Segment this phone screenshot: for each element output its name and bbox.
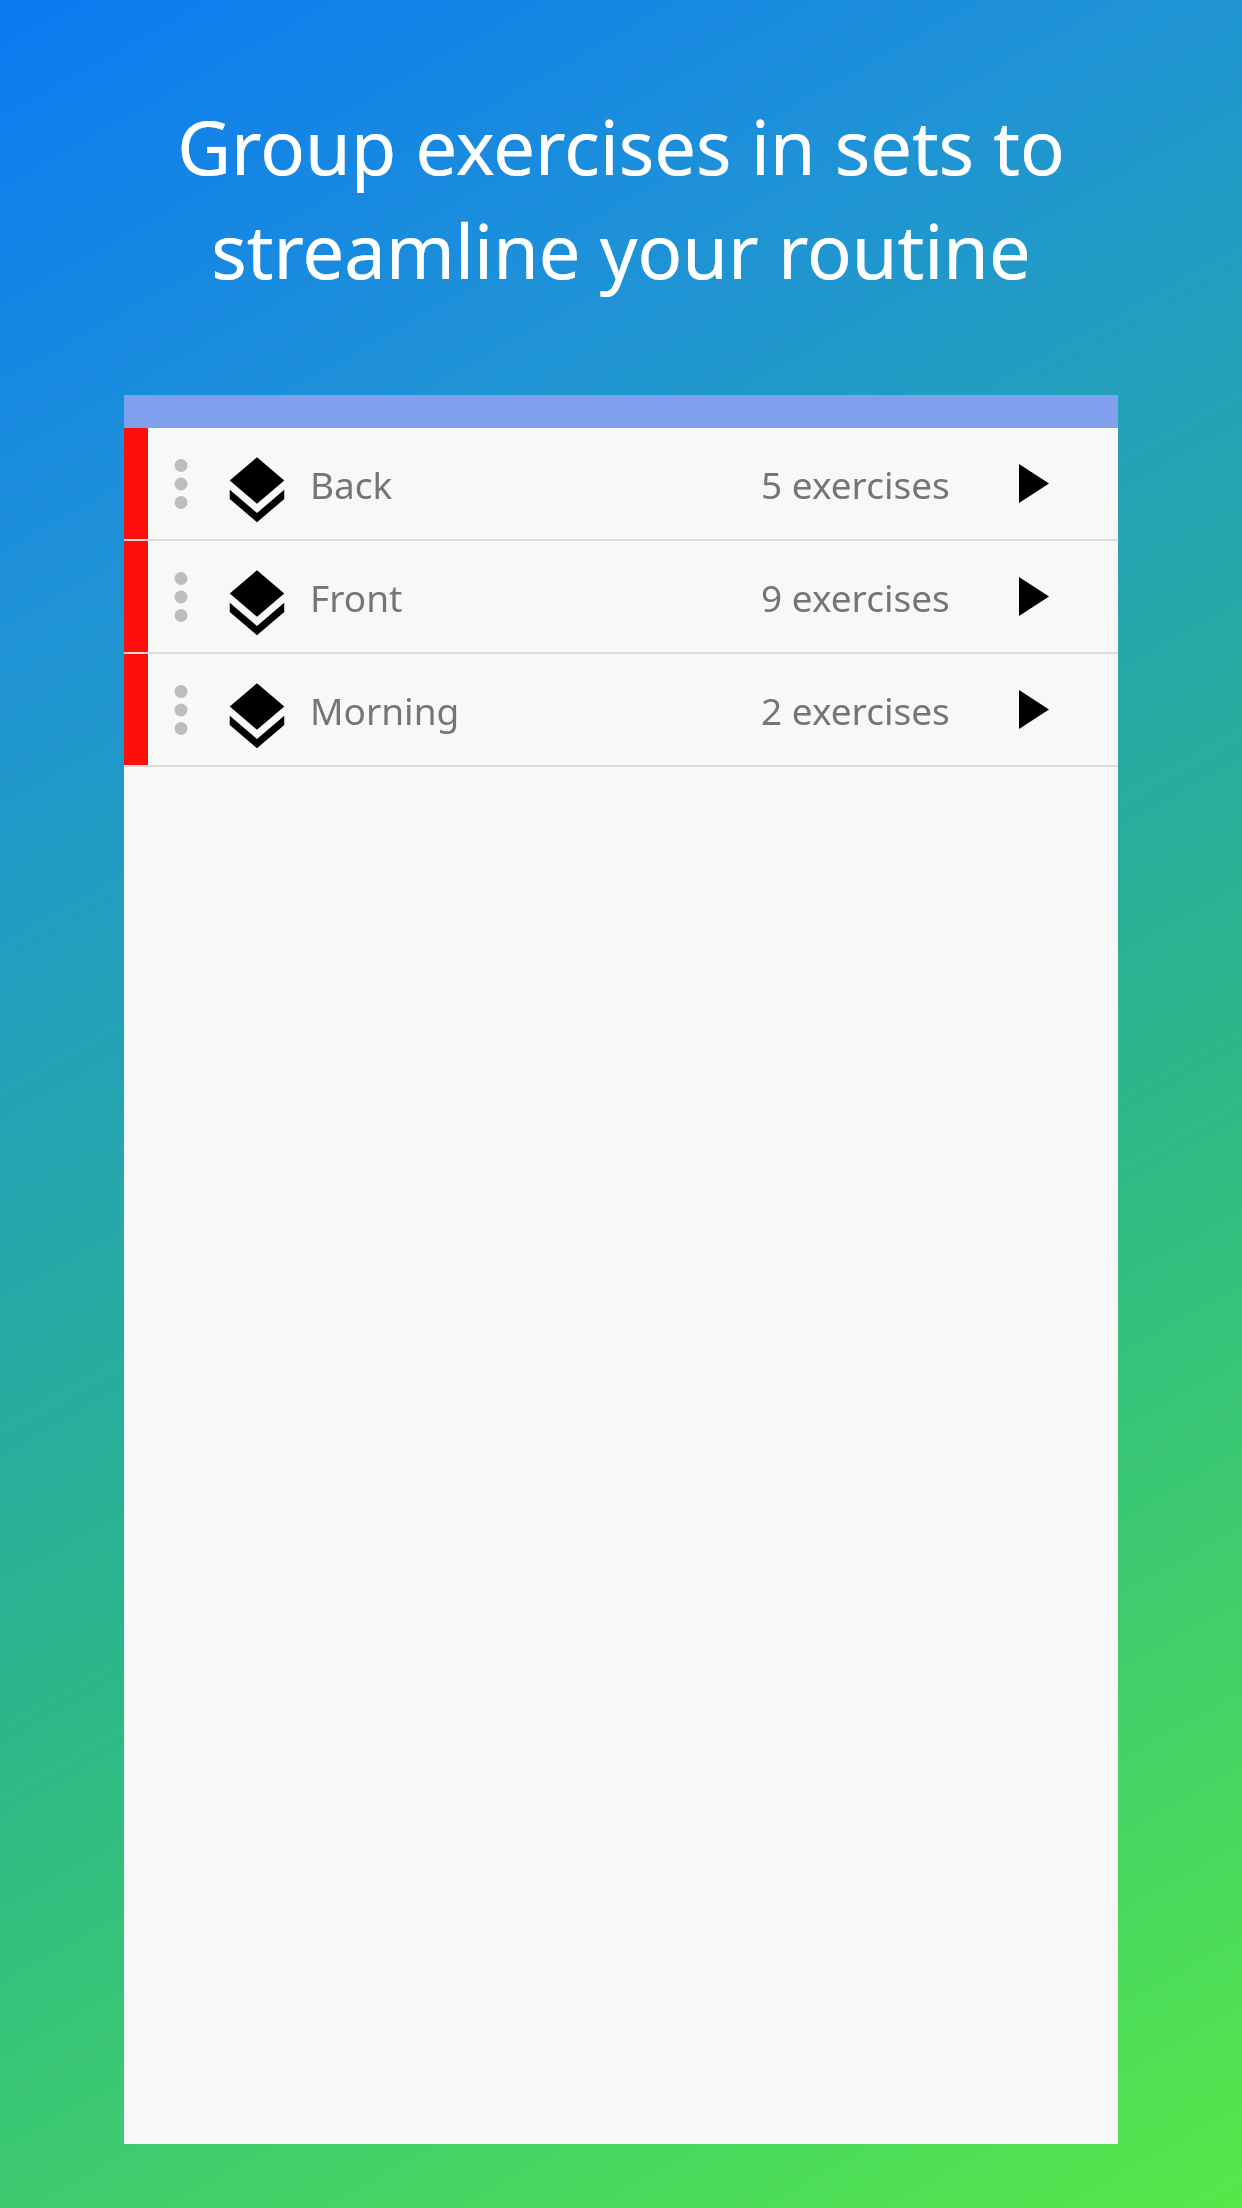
button[interactable]: More options xyxy=(124,428,1118,539)
button[interactable]: More options xyxy=(148,428,214,539)
button[interactable]: Start set xyxy=(950,541,1118,652)
staticText: Group exercises in sets to streamline yo… xyxy=(90,96,1152,300)
button[interactable]: More options xyxy=(148,541,214,652)
staticText: Back xyxy=(310,459,761,509)
staticText: 2 exercises xyxy=(761,685,950,735)
staticText: Front xyxy=(310,572,761,622)
button[interactable]: More options xyxy=(124,541,1118,652)
button[interactable]: Start set xyxy=(950,654,1118,765)
staticText: 5 exercises xyxy=(761,459,950,509)
button[interactable]: More options xyxy=(124,654,1118,765)
button[interactable]: More options xyxy=(148,654,214,765)
button[interactable]: Start set xyxy=(950,428,1118,539)
staticText: Morning xyxy=(310,685,761,735)
staticText: 9 exercises xyxy=(761,572,950,622)
